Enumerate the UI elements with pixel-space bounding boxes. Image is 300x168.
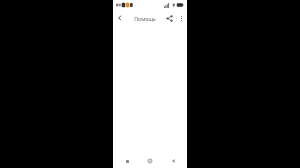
- staticText: Помощь: [134, 15, 156, 22]
- button[interactable]: Back: [164, 154, 182, 168]
- button[interactable]: Recent apps: [118, 154, 136, 168]
- button[interactable]: Share: [163, 10, 176, 26]
- button[interactable]: Back: [113, 10, 127, 26]
- button[interactable]: More options: [176, 10, 187, 26]
- button[interactable]: Home: [141, 154, 159, 168]
